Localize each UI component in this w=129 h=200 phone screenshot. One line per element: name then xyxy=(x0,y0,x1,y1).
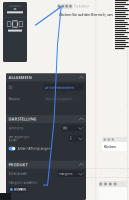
button[interactable]: AUSWAHL xyxy=(8,186,28,192)
staticText: Klicken Sie auf den Bereich, um xyxy=(59,12,113,17)
staticText: DARSTELLUNG xyxy=(8,116,36,122)
button[interactable]: PRODUKT xyxy=(6,161,86,169)
staticText: Klicken xyxy=(104,144,116,149)
button[interactable]: ALLGEMEIN xyxy=(6,73,86,81)
staticText: ID xyxy=(8,85,12,90)
button[interactable]: 5 xyxy=(68,135,83,142)
staticText: Name xyxy=(8,96,19,101)
staticText: 5 xyxy=(70,137,72,140)
button[interactable]: Produktion xyxy=(3,17,27,34)
staticText: Name eingeben xyxy=(45,96,72,101)
staticText: Produktion xyxy=(73,5,89,8)
button[interactable]: Kategorie xyxy=(57,170,83,177)
staticText: ALLGEMEIN xyxy=(8,75,31,80)
staticText: Artikelauswahl xyxy=(8,172,27,175)
staticText: pro.ernaeaeaeva xyxy=(45,85,74,90)
staticText: Lfd. xyxy=(63,126,68,130)
staticText: Kategorie auswählen xyxy=(8,181,37,184)
button[interactable]: pro.ernaeaeaeva xyxy=(43,84,83,91)
button[interactable]: Artikel (Affinity) zeigen xyxy=(6,144,86,154)
staticText: Artikel (Affinity) zeigen xyxy=(17,147,50,150)
staticText: AUSWAHL xyxy=(14,188,26,191)
staticText: Sortierung xyxy=(8,126,23,130)
button[interactable]: Lfd. xyxy=(61,125,83,131)
staticText: PRODUKT xyxy=(8,162,27,167)
staticText: Max. angezeigte Anzahl xyxy=(8,135,29,142)
button[interactable]: Trockenkabine xyxy=(3,2,27,17)
staticText: Kategorie xyxy=(59,172,73,175)
button[interactable]: DARSTELLUNG xyxy=(6,115,86,123)
button[interactable]: Name eingeben xyxy=(43,95,83,102)
